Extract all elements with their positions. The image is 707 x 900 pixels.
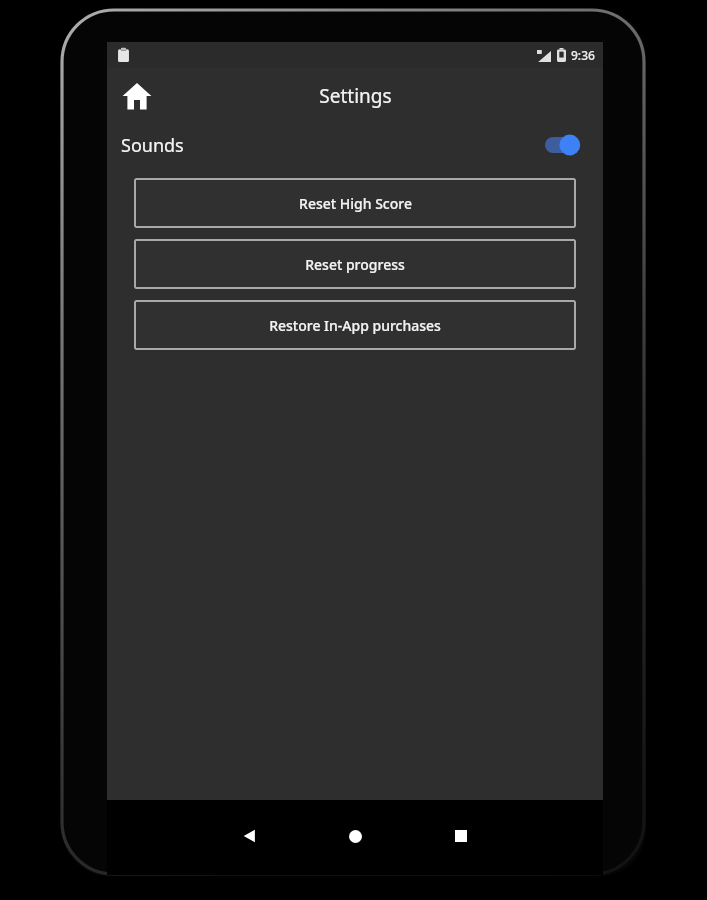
- button[interactable]: Back: [227, 814, 271, 858]
- button[interactable]: Sounds: [107, 124, 603, 166]
- other: Sounds toggle: [541, 132, 581, 158]
- staticText: Reset progress: [305, 255, 405, 274]
- button[interactable]: Restore In-App purchases: [134, 300, 576, 350]
- button[interactable]: Home: [115, 74, 159, 118]
- staticText: Sounds: [121, 133, 184, 158]
- button[interactable]: Home: [333, 814, 377, 858]
- staticText: Settings: [319, 83, 392, 109]
- button[interactable]: Reset progress: [134, 239, 576, 289]
- button[interactable]: Reset High Score: [134, 178, 576, 228]
- staticText: Reset High Score: [299, 194, 412, 213]
- button[interactable]: Recent apps: [439, 814, 483, 858]
- staticText: Restore In-App purchases: [269, 316, 441, 335]
- staticText: 9:36: [571, 47, 595, 63]
